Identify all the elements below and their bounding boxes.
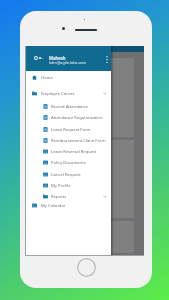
staticText: Leave Reversal Request bbox=[51, 149, 107, 155]
staticText: My Profile bbox=[51, 183, 107, 189]
staticText: Policy Documents bbox=[51, 160, 107, 166]
button[interactable]: My Calendar bbox=[26, 200, 111, 211]
button[interactable]: Policy Documents bbox=[26, 157, 111, 168]
staticText: Cancel Request bbox=[51, 172, 107, 178]
staticText: Reports bbox=[51, 194, 103, 200]
button[interactable]: Reimbursement Claim Form bbox=[26, 135, 111, 146]
button[interactable]: Home bbox=[26, 72, 111, 83]
button[interactable]: More options bbox=[103, 50, 111, 68]
staticText: Leave Request Form bbox=[51, 127, 107, 133]
staticText: Reimbursement Claim Form bbox=[51, 138, 107, 144]
button[interactable]: Cancel Request bbox=[26, 169, 111, 180]
button[interactable]: Leave Request Form bbox=[26, 124, 111, 135]
staticText: Home bbox=[41, 75, 107, 81]
button[interactable]: Employee Corner bbox=[26, 88, 111, 99]
staticText: My Calendar bbox=[41, 203, 107, 209]
button[interactable]: Record Attendance bbox=[26, 101, 111, 112]
button[interactable]: My Profile bbox=[26, 180, 111, 191]
staticText: Mahesh bbox=[49, 55, 66, 61]
button[interactable]: Reports bbox=[26, 191, 111, 202]
staticText: Employee Corner bbox=[41, 91, 103, 97]
button[interactable]: Attendance Regularization bbox=[26, 112, 111, 123]
staticText: Record Attendance bbox=[51, 104, 107, 110]
staticText: kdm@agile-labs.com bbox=[49, 60, 87, 65]
button[interactable]: Leave Reversal Request bbox=[26, 146, 111, 157]
staticText: Attendance Regularization bbox=[51, 115, 107, 121]
